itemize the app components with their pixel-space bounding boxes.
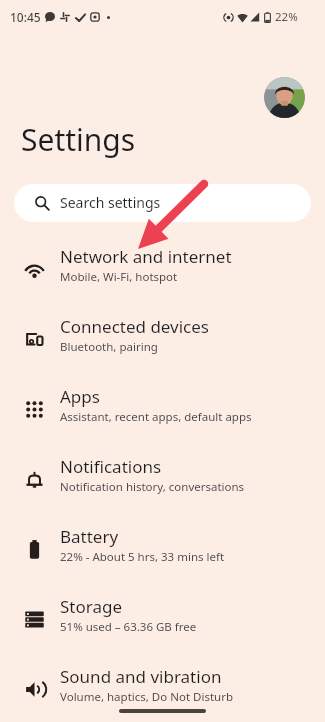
- button[interactable]: Connected devices: [0, 300, 325, 370]
- staticText: Network and internet: [60, 245, 232, 268]
- button[interactable]: Search settings: [14, 184, 311, 222]
- staticText: Connected devices: [60, 315, 210, 338]
- staticText: Notification history, conversations: [60, 479, 245, 495]
- staticText: 51% used – 63.36 GB free: [60, 619, 197, 635]
- button[interactable]: Notifications: [0, 440, 325, 510]
- staticText: Notifications: [60, 455, 162, 478]
- staticText: Bluetooth, pairing: [60, 339, 158, 355]
- staticText: Volume, haptics, Do Not Disturb: [60, 689, 233, 705]
- staticText: Battery: [60, 525, 119, 548]
- staticText: Assistant, recent apps, default apps: [60, 409, 252, 425]
- staticText: 10:45: [10, 9, 41, 25]
- button[interactable]: Apps: [0, 370, 325, 440]
- staticText: Sound and vibration: [60, 665, 222, 688]
- staticText: Mobile, Wi-Fi, hotspot: [60, 269, 178, 285]
- button[interactable]: Sound and vibration: [0, 650, 325, 720]
- staticText: Storage: [60, 595, 123, 618]
- staticText: Search settings: [60, 193, 161, 212]
- staticText: 22%: [275, 9, 298, 25]
- button[interactable]: Network and internet: [0, 230, 325, 300]
- staticText: Apps: [60, 385, 100, 408]
- staticText: Settings: [21, 119, 136, 160]
- button[interactable]: [264, 77, 305, 118]
- staticText: 22% - About 5 hrs, 33 mins left: [60, 549, 225, 565]
- button[interactable]: Battery: [0, 510, 325, 580]
- button[interactable]: Storage: [0, 580, 325, 650]
